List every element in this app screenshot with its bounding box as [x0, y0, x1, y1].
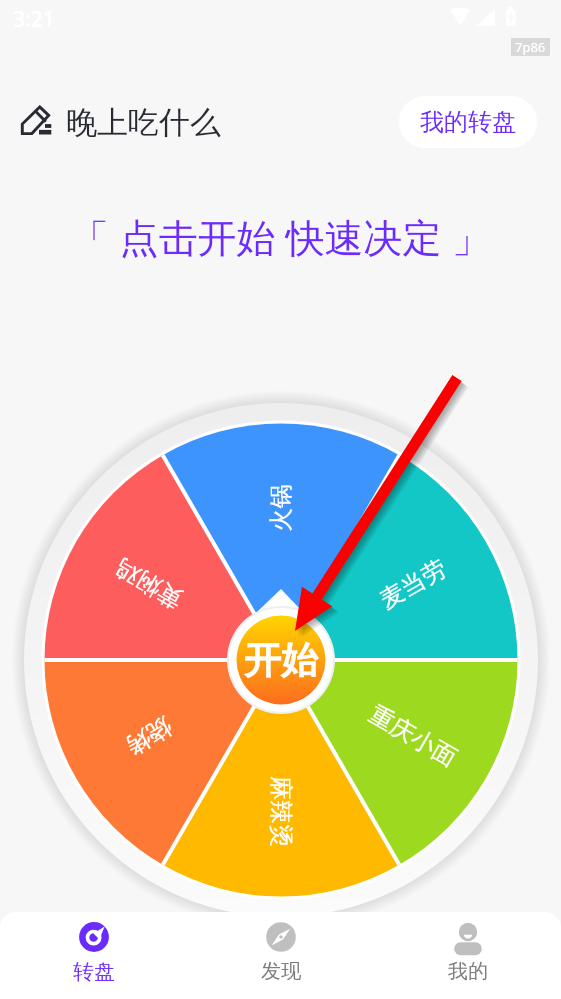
staticText: 7p86 [515, 38, 546, 56]
staticText: 晚上吃什么 [66, 103, 221, 142]
button[interactable]: 开始 [229, 608, 333, 712]
staticText: 黄焖鸡 [110, 553, 188, 615]
other: 编辑转盘 [20, 105, 56, 141]
staticText: 重庆小面 [364, 699, 462, 773]
button[interactable]: 发现 [187, 912, 374, 999]
staticText: 火锅 [266, 484, 296, 532]
staticText: 转盘 [73, 959, 115, 985]
staticText: 烧烤 [121, 711, 177, 761]
button[interactable]: 我的 [374, 912, 561, 999]
staticText: 麻辣烫 [266, 776, 296, 848]
button[interactable]: 编辑转盘 [20, 103, 221, 142]
staticText: 开始 [244, 637, 318, 684]
staticText: 麦当劳 [374, 553, 452, 615]
staticText: 我的转盘 [420, 107, 516, 137]
button[interactable]: 我的转盘 [399, 96, 537, 148]
staticText: 我的 [448, 959, 488, 984]
staticText: 「 点击开始 快速决定 」 [70, 210, 491, 263]
button[interactable]: 转盘 [0, 912, 187, 999]
staticText: 发现 [261, 959, 301, 984]
